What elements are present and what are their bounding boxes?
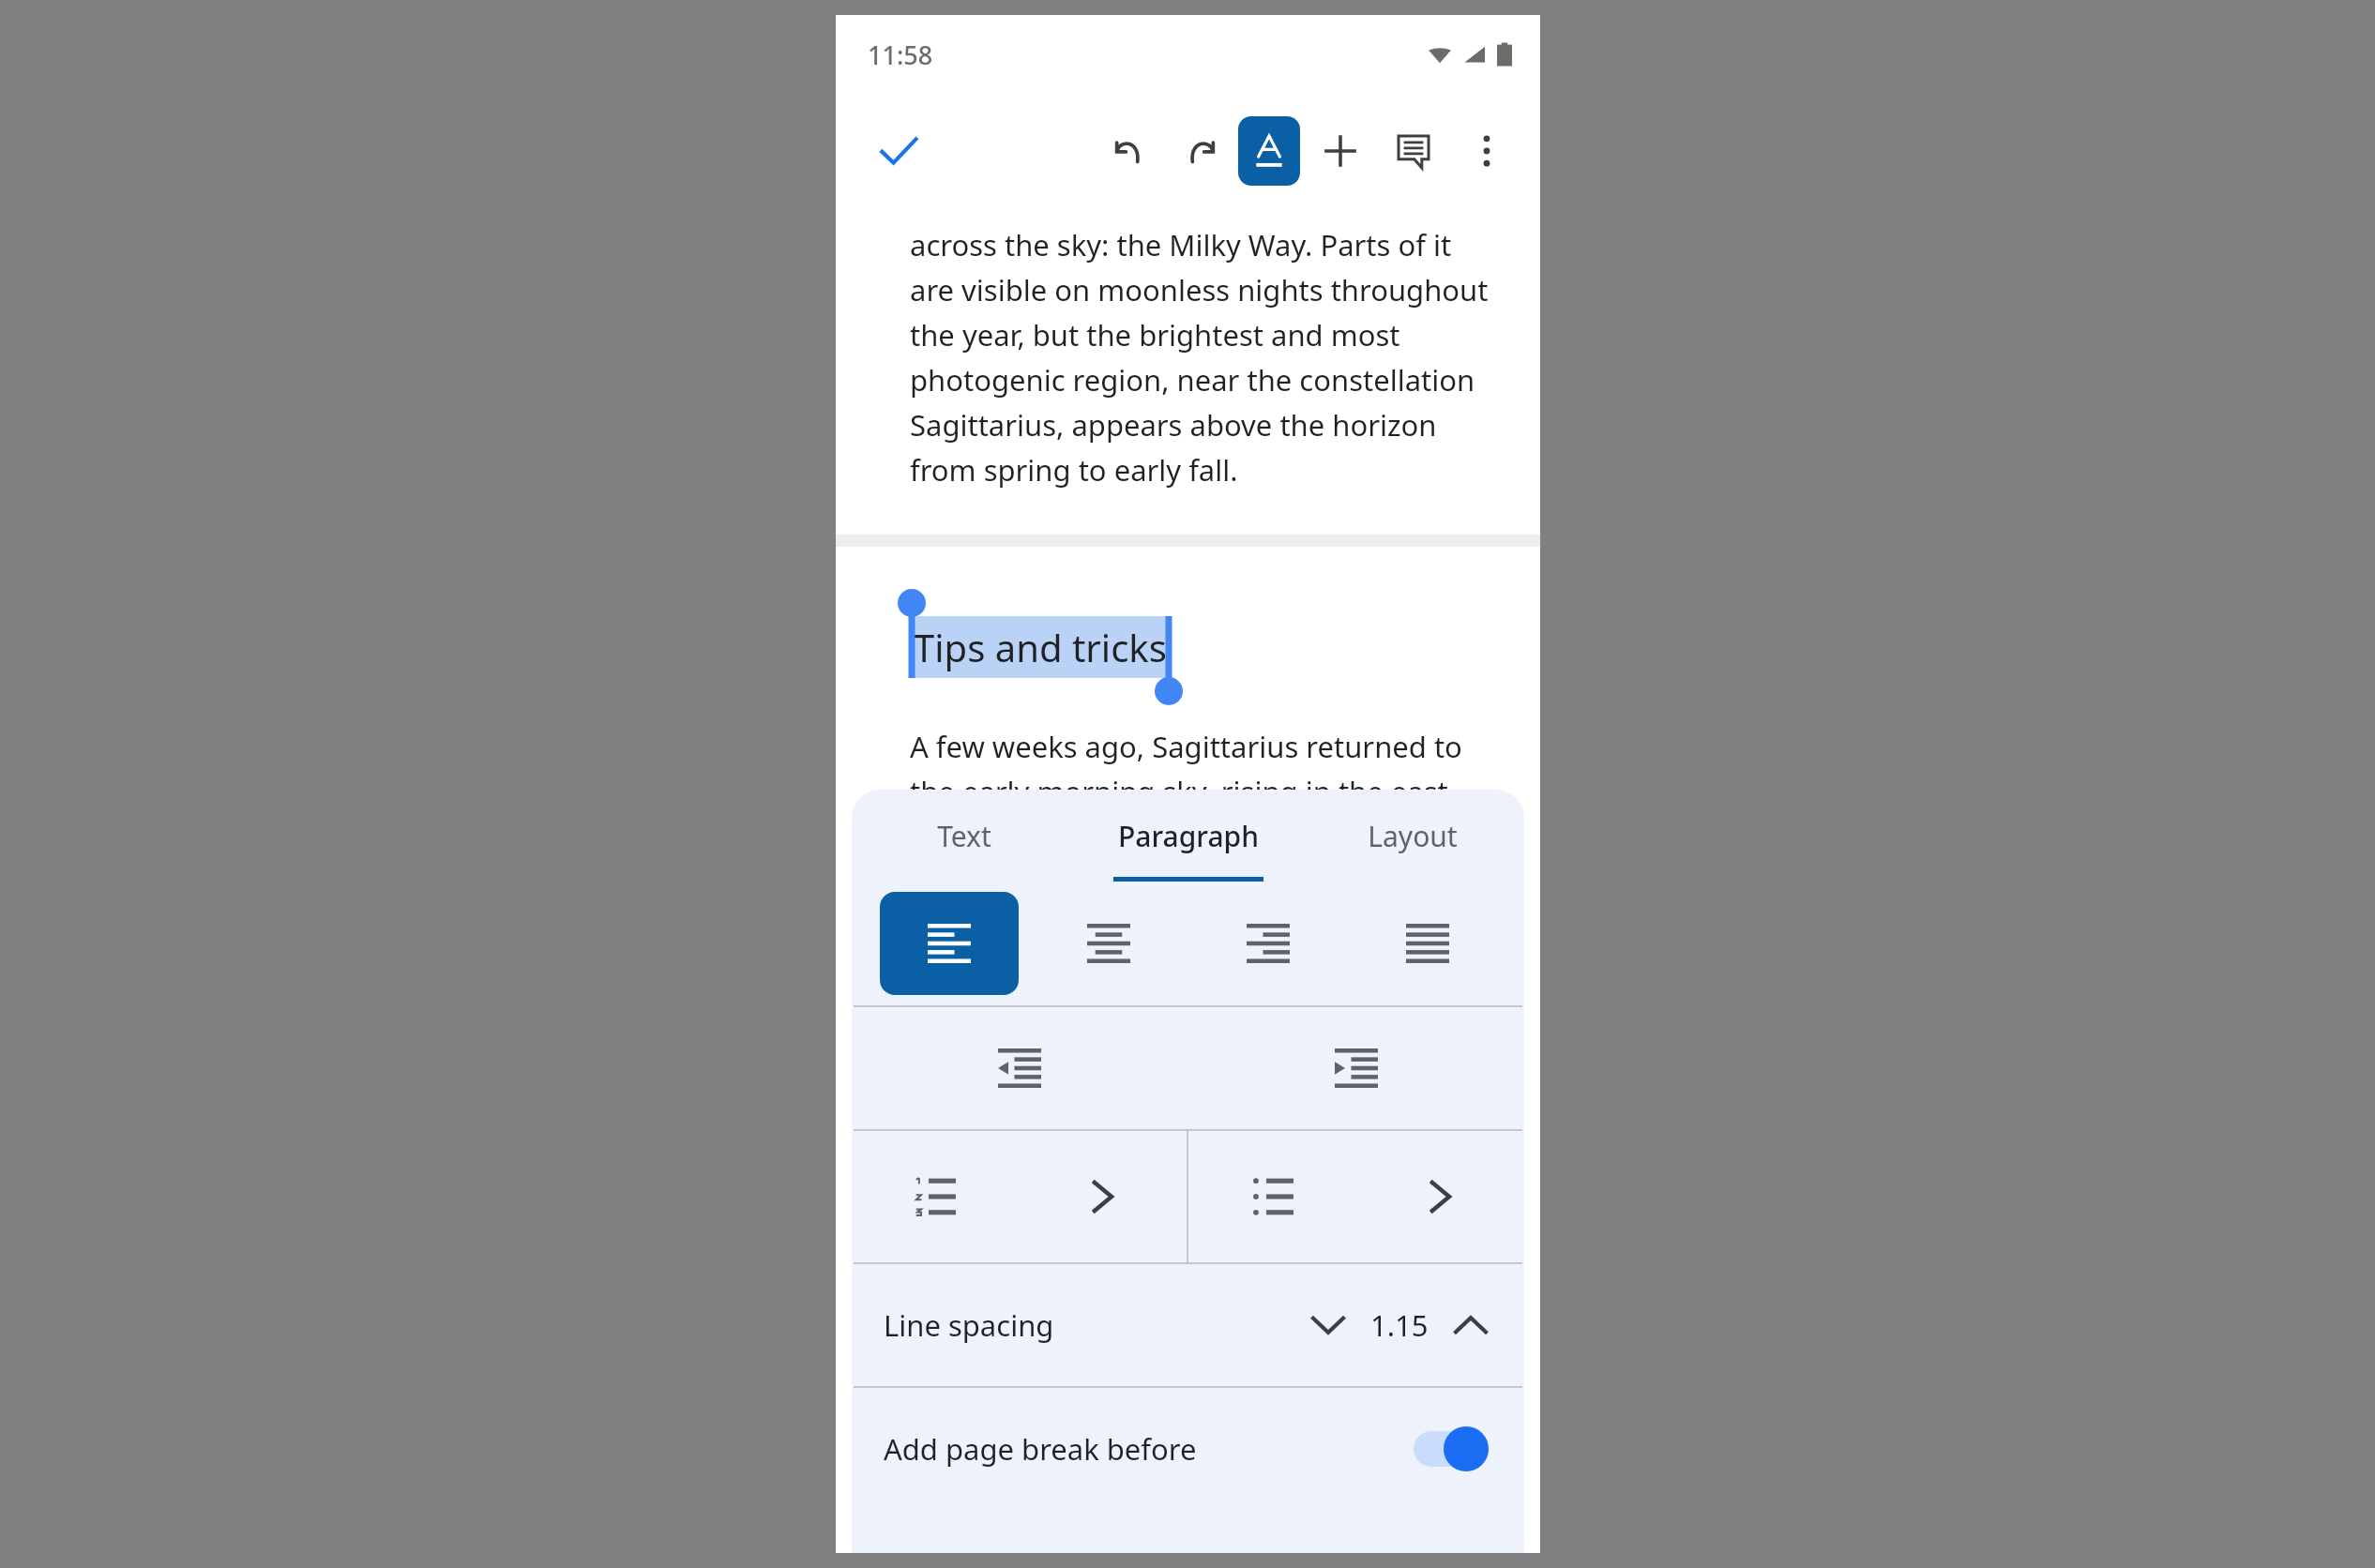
staticText: Tips and tricks: [914, 622, 1167, 672]
button[interactable]: Align left: [880, 892, 1019, 995]
button[interactable]: Decrease indent: [971, 1019, 1068, 1117]
button[interactable]: Increase line spacing: [1434, 1289, 1507, 1362]
button[interactable]: Align center: [1039, 892, 1178, 995]
button[interactable]: Increase indent: [1308, 1019, 1405, 1117]
button[interactable]: Numbered list: [852, 1131, 1187, 1262]
button[interactable]: Bulleted list: [1188, 1131, 1524, 1262]
staticText: Layout: [1368, 817, 1458, 855]
button[interactable]: Done: [864, 116, 933, 186]
button[interactable]: Paragraph: [1076, 790, 1300, 882]
button[interactable]: Format text: [1238, 116, 1300, 186]
button[interactable]: More options: [1450, 114, 1523, 188]
staticText: 1.15: [1370, 1305, 1429, 1345]
button[interactable]: Add page break before: [852, 1388, 1524, 1510]
button[interactable]: Insert: [1304, 114, 1377, 188]
staticText: Line spacing: [884, 1305, 1292, 1345]
button[interactable]: Align right: [1199, 892, 1338, 995]
button[interactable]: Decrease line spacing: [1292, 1289, 1365, 1362]
button[interactable]: Redo: [1165, 114, 1238, 188]
button[interactable]: Text: [852, 790, 1076, 882]
staticText: Paragraph: [1118, 817, 1259, 855]
button[interactable]: Line spacing: [852, 1264, 1524, 1386]
staticText: Add page break before: [884, 1429, 1414, 1469]
staticText: A few weeks ago, Sagittarius returned to…: [910, 727, 1491, 856]
staticText: Text: [937, 817, 991, 855]
button[interactable]: Comments: [1377, 114, 1450, 188]
staticText: 11:58: [868, 38, 933, 72]
button[interactable]: Undo: [1092, 114, 1165, 188]
staticText: across the sky: the Milky Way. Parts of …: [910, 225, 1491, 490]
button[interactable]: Justify: [1358, 892, 1497, 995]
button[interactable]: Layout: [1300, 790, 1524, 882]
